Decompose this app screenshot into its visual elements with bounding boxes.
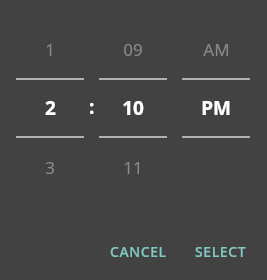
button[interactable]: 09 — [99, 20, 167, 78]
button[interactable]: 2 — [16, 80, 84, 136]
staticText: PM — [201, 95, 231, 121]
staticText: 11 — [123, 156, 143, 179]
staticText: 09 — [123, 38, 143, 61]
button[interactable]: PM — [182, 80, 250, 136]
staticText: 3 — [45, 156, 55, 179]
button[interactable]: 1 — [16, 20, 84, 78]
button[interactable]: 3 — [16, 138, 84, 196]
staticText: CANCEL — [110, 242, 167, 261]
button[interactable]: CANCEL — [100, 236, 177, 267]
staticText: 10 — [122, 95, 144, 121]
staticText: AM — [203, 38, 230, 61]
button[interactable]: AM — [182, 20, 250, 78]
staticText: SELECT — [195, 242, 247, 261]
button[interactable]: 11 — [99, 138, 167, 196]
staticText: : — [89, 94, 95, 120]
button[interactable]: SELECT — [185, 236, 257, 267]
staticText: 2 — [45, 95, 56, 121]
button[interactable]: 10 — [99, 80, 167, 136]
staticText: 1 — [45, 38, 55, 61]
